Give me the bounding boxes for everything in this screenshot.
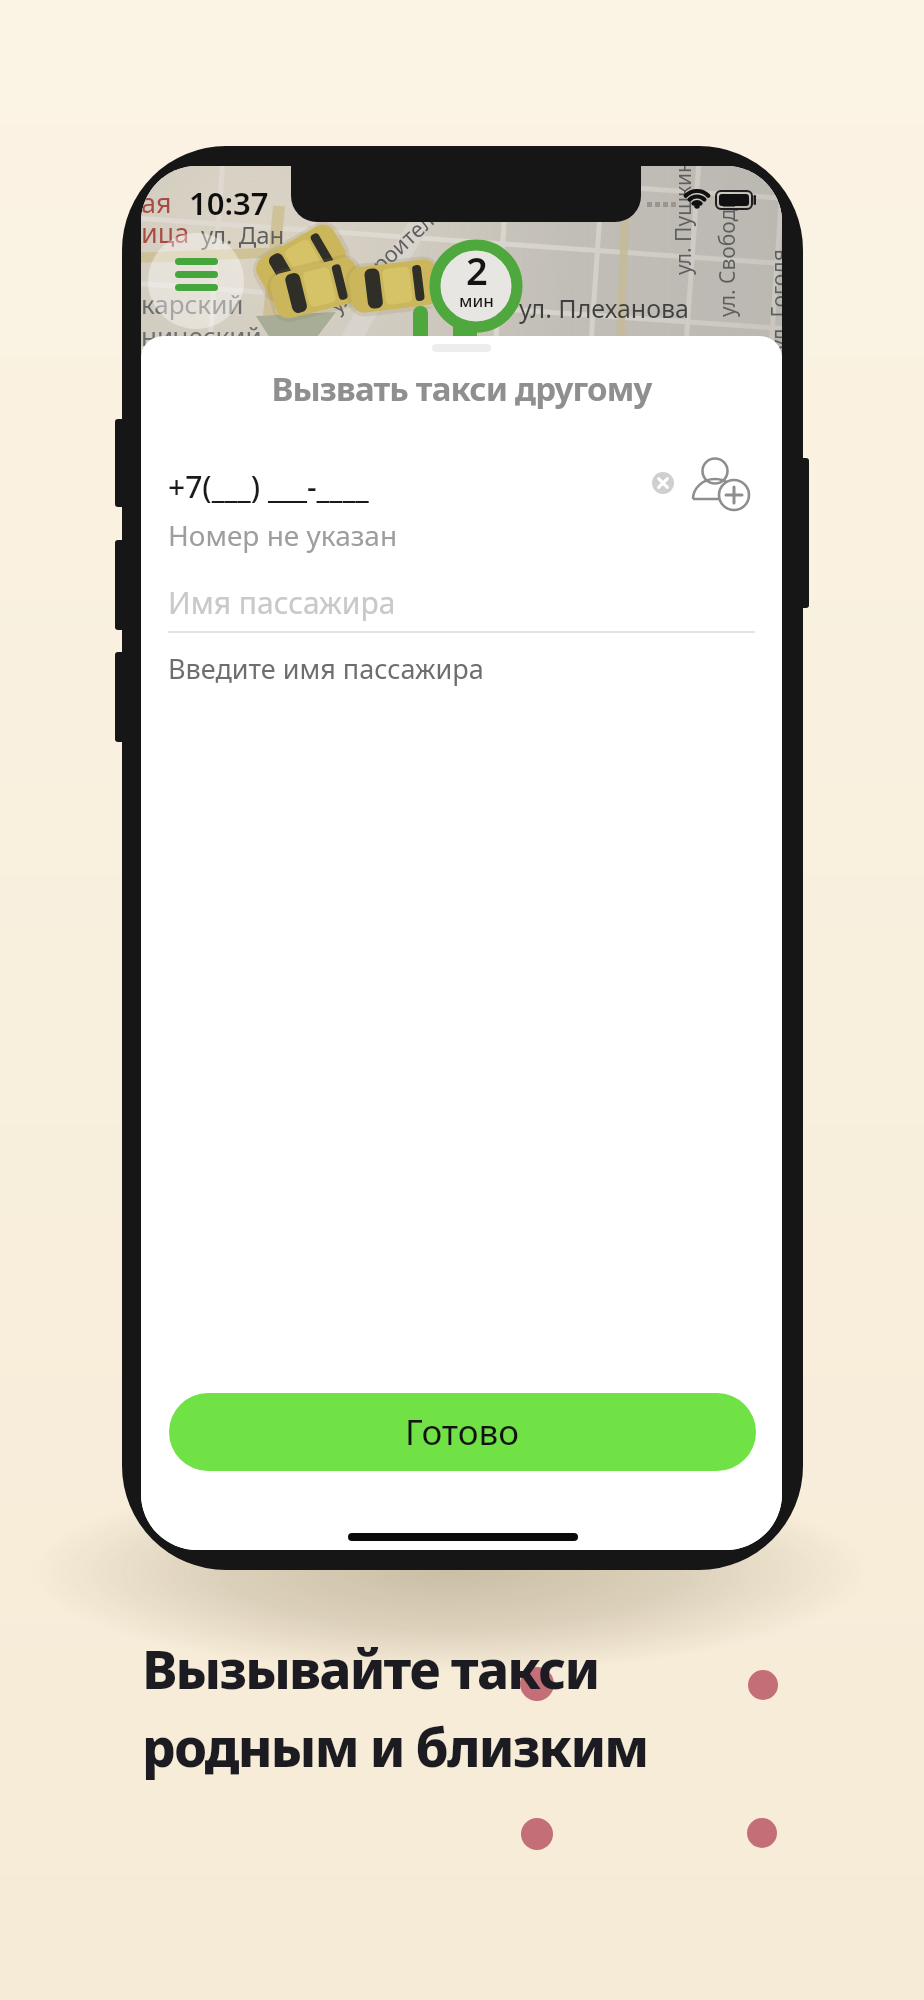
staticText: нический xyxy=(141,318,262,353)
staticText: карский xyxy=(141,286,244,321)
staticText: мин xyxy=(459,289,494,312)
staticText: Вызывайте такси xyxy=(142,1632,599,1704)
staticText: Введите имя пассажира xyxy=(168,650,484,687)
staticText: Имя пассажира xyxy=(168,582,396,623)
staticText: ул. Плеханова xyxy=(519,291,690,325)
staticText: ул. Гоголя xyxy=(764,248,782,350)
staticText: ица xyxy=(141,214,190,251)
staticText: ул. Пушкина xyxy=(669,166,698,275)
staticText: ул. Дан xyxy=(201,218,285,251)
staticText: Вызвать такси другому xyxy=(141,366,782,411)
button[interactable] xyxy=(148,233,244,329)
button[interactable]: Готово xyxy=(169,1393,756,1471)
staticText: 10:37 xyxy=(189,182,269,224)
button[interactable] xyxy=(689,452,755,522)
staticText: ул. Свободы xyxy=(713,192,742,317)
staticText: Готово xyxy=(405,1408,520,1456)
staticText: ул. Строителей xyxy=(321,187,459,319)
staticText: 2 xyxy=(466,244,488,296)
button[interactable]: Имя пассажира xyxy=(161,574,762,634)
staticText: +7(___) ___-____ xyxy=(168,466,369,507)
staticText: ая xyxy=(141,184,172,221)
staticText: родным и близким xyxy=(142,1710,648,1782)
staticText: Номер не указан xyxy=(168,516,398,554)
button[interactable]: +7(___) ___-____ xyxy=(161,456,661,526)
button[interactable] xyxy=(646,466,680,500)
